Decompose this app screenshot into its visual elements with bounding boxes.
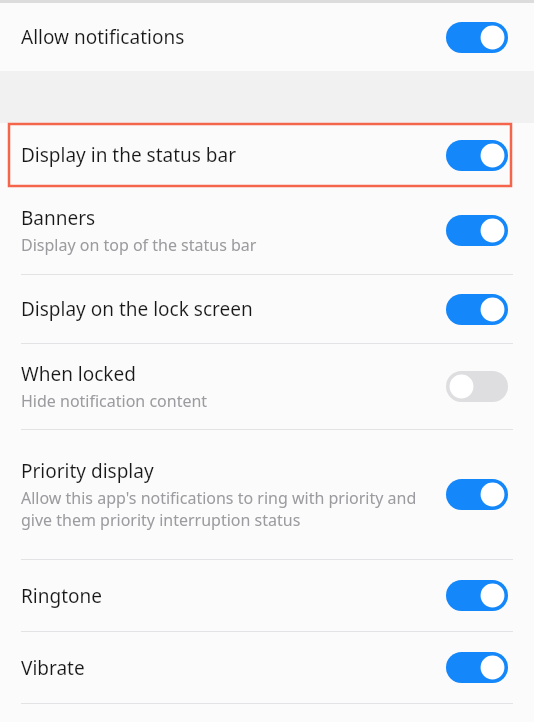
button[interactable]: Banners (446, 215, 508, 246)
staticText: Vibrate (21, 655, 85, 681)
button[interactable]: Vibrate (0, 632, 534, 703)
button[interactable]: Vibrate (446, 652, 508, 683)
button[interactable]: Allow notifications (0, 3, 534, 71)
button[interactable]: Display in the status bar (446, 140, 508, 171)
button[interactable]: Ringtone (0, 560, 534, 631)
staticText: Allow this app's notifications to ring w… (21, 487, 434, 531)
staticText: Display in the status bar (21, 142, 446, 168)
button[interactable]: When locked (0, 344, 534, 429)
button[interactable]: Banners (0, 187, 534, 274)
button[interactable]: When locked (446, 371, 508, 402)
button[interactable]: Ringtone (446, 580, 508, 611)
staticText: Hide notification content (21, 390, 208, 412)
staticText: Banners (21, 205, 96, 231)
button[interactable]: Display in the status bar (8, 123, 512, 187)
button[interactable]: Display on the lock screen (0, 275, 534, 343)
button[interactable]: Allow notifications (446, 22, 508, 53)
staticText: Ringtone (21, 583, 102, 609)
staticText: Display on top of the status bar (21, 234, 257, 256)
staticText: Priority display (21, 458, 154, 484)
button[interactable]: Priority display (0, 430, 534, 559)
staticText: Display on the lock screen (21, 296, 253, 322)
staticText: Allow notifications (21, 24, 446, 50)
staticText: When locked (21, 361, 136, 387)
button[interactable]: Display on the lock screen (446, 294, 508, 325)
button[interactable]: Priority display (446, 479, 508, 510)
